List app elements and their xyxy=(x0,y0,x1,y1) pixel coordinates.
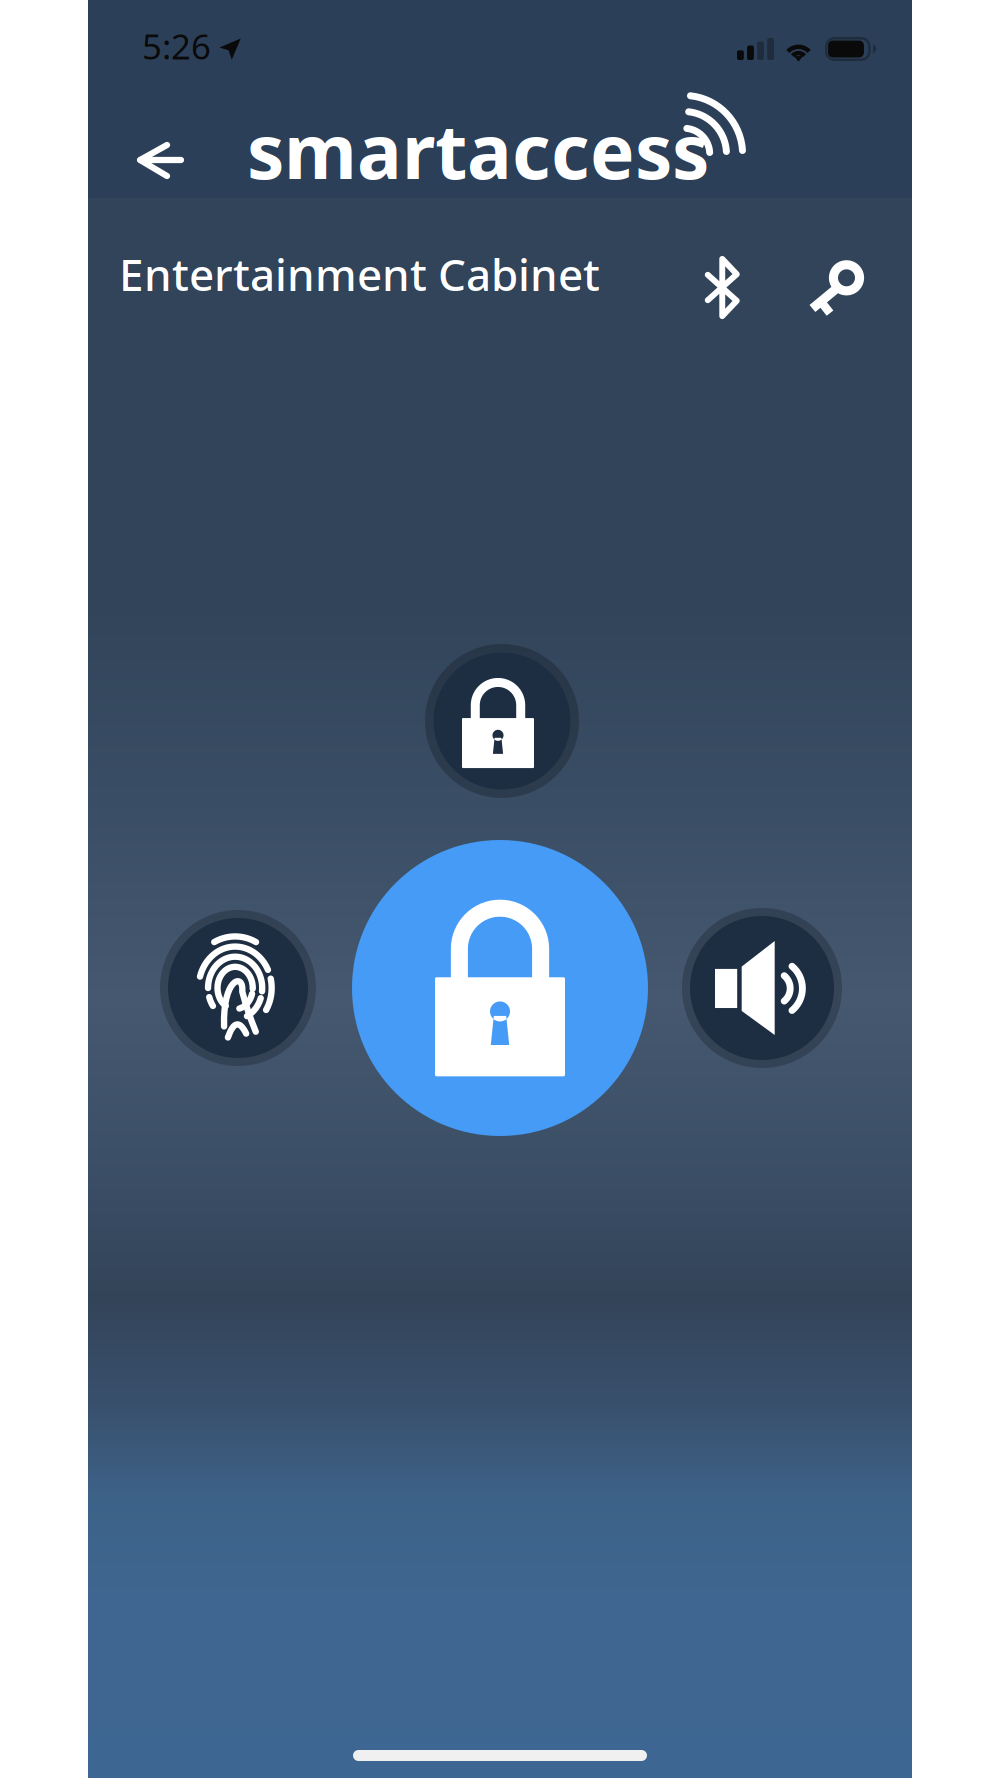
button[interactable]: Fingerprint unlock xyxy=(160,910,316,1066)
staticText: Entertainment Cabinet xyxy=(119,245,600,303)
staticText: smartaccess xyxy=(247,100,709,200)
button[interactable]: Sound xyxy=(682,908,842,1068)
button[interactable]: Lock xyxy=(425,644,579,798)
button[interactable]: Bluetooth xyxy=(681,234,763,341)
staticText: 5:26 xyxy=(142,23,211,69)
button[interactable]: Back xyxy=(112,117,209,204)
button[interactable]: Keys xyxy=(782,230,890,338)
button[interactable]: Unlock xyxy=(352,840,648,1136)
